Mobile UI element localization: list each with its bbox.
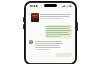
button[interactable] (56, 53, 72, 57)
button[interactable]: Sender avatar (28, 40, 73, 51)
button[interactable] (28, 13, 73, 22)
button[interactable] (45, 25, 72, 38)
other: Sender avatar (29, 40, 33, 44)
